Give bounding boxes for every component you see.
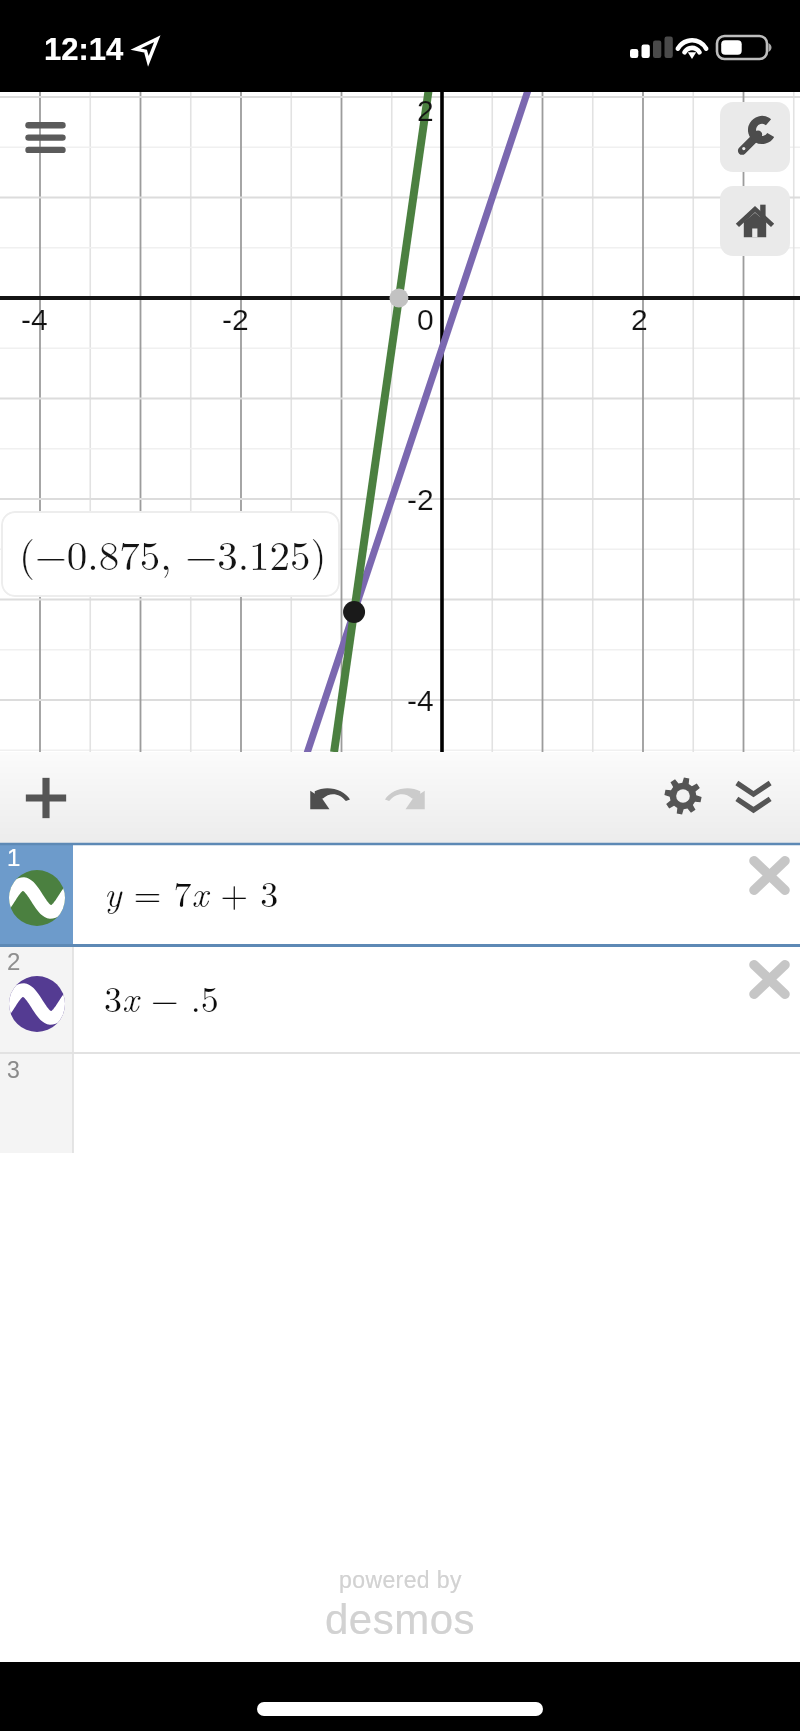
button[interactable]: Undo [291, 760, 367, 836]
staticText: 0 [417, 303, 434, 337]
staticText: -4 [407, 684, 434, 718]
button[interactable]: Home view [720, 186, 790, 256]
button[interactable]: Redo [367, 760, 443, 836]
button[interactable]: Settings [652, 765, 714, 827]
staticText: -2 [407, 483, 434, 517]
staticText: 2 [7, 948, 21, 975]
staticText: 1 [7, 844, 21, 871]
staticText: desmos [325, 1596, 476, 1643]
button[interactable]: Collapse list [722, 765, 784, 827]
staticText: (−0.875, −3.125) [19, 524, 327, 582]
staticText: y = 7x + 3 [104, 866, 279, 917]
button[interactable]: Delete expression [741, 847, 797, 903]
staticText: -4 [21, 303, 48, 337]
staticText: 2 [631, 303, 648, 337]
button[interactable]: 3 [0, 1054, 800, 1153]
button[interactable]: Menu [13, 107, 78, 172]
staticText: 12:14 [44, 32, 124, 67]
button[interactable]: Delete expression [741, 951, 797, 1007]
button[interactable]: 2 [0, 947, 800, 1054]
staticText: 3 [7, 1057, 20, 1083]
staticText: 2 [417, 94, 434, 128]
button[interactable]: 1 [0, 843, 800, 947]
staticText: powered by [339, 1567, 462, 1593]
button[interactable]: Add expression [15, 767, 77, 829]
staticText: 3x − .5 [104, 971, 219, 1022]
button[interactable]: Graph settings [720, 102, 790, 172]
staticText: -2 [222, 303, 249, 337]
